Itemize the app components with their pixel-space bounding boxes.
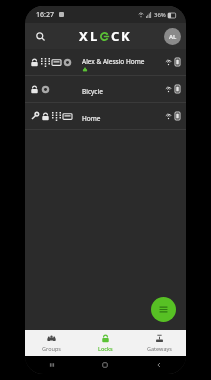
staticText: 36%: [154, 11, 166, 19]
other: Home: [101, 361, 109, 369]
staticText: Home: [82, 114, 101, 123]
staticText: 16:27: [36, 10, 54, 20]
button[interactable]: Gateways: [132, 330, 186, 356]
button[interactable]: Home: [25, 103, 186, 129]
other: Recents: [48, 361, 56, 369]
staticText: Groups: [42, 345, 61, 352]
staticText: X: [79, 27, 90, 45]
button[interactable]: Add lock: [151, 297, 176, 322]
button[interactable]: Search: [29, 25, 51, 47]
button[interactable]: Profile: [164, 28, 181, 45]
other: Back: [155, 361, 163, 369]
button[interactable]: Groups: [25, 330, 78, 356]
staticText: Locks: [98, 345, 113, 352]
staticText: AL: [169, 33, 177, 41]
button[interactable]: Bicycle: [25, 76, 186, 102]
button[interactable]: Alex & Alessio Home: [25, 49, 186, 75]
staticText: C: [111, 27, 121, 45]
button[interactable]: Locks: [78, 330, 132, 356]
staticText: Gateways: [147, 345, 172, 352]
staticText: K: [121, 27, 132, 45]
staticText: L: [90, 27, 99, 45]
staticText: Alex & Alessio Home: [82, 57, 145, 66]
staticText: Bicycle: [82, 87, 103, 96]
